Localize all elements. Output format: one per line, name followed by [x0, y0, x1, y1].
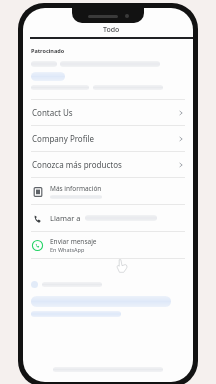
staticText: Llamar a — [50, 213, 81, 223]
staticText: Patrocinado — [31, 47, 65, 54]
button[interactable]: Enviar mensaje — [23, 232, 193, 258]
staticText: Todo — [103, 25, 120, 35]
staticText: En WhatsApp — [50, 246, 85, 253]
button[interactable]: Más información — [23, 178, 193, 204]
staticText: Conozca más productos — [32, 159, 122, 170]
staticText: Enviar mensaje — [50, 237, 97, 246]
staticText: Contact Us — [32, 107, 73, 118]
button[interactable]: Conozca más productos — [23, 152, 193, 177]
button[interactable]: Llamar a — [23, 205, 193, 231]
button[interactable]: Company Profile — [23, 126, 193, 151]
button[interactable]: Contact Us — [23, 100, 193, 125]
button[interactable]: Todo — [30, 24, 193, 40]
staticText: Más información — [50, 184, 102, 193]
staticText: Company Profile — [32, 133, 95, 144]
